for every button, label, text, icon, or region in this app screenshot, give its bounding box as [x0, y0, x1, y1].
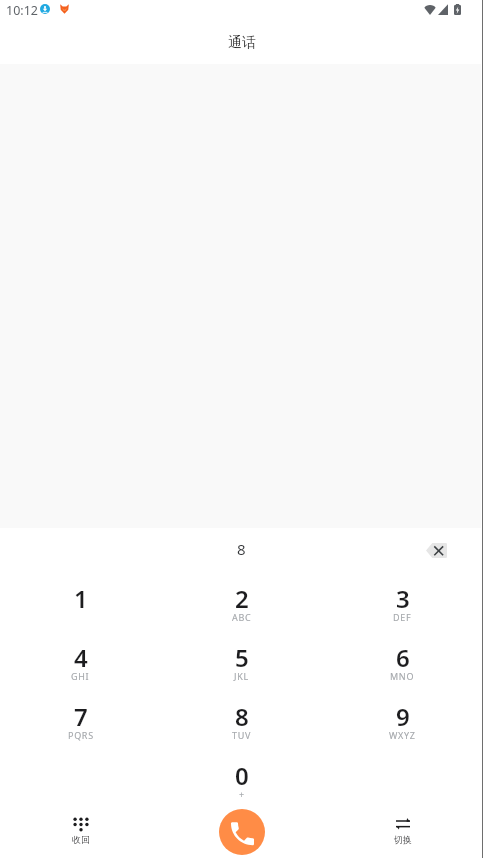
staticText: MNO — [390, 670, 415, 682]
button[interactable]: 7 — [0, 688, 161, 747]
staticText: 9 — [396, 700, 410, 733]
button[interactable]: Call — [219, 809, 265, 855]
staticText: 0 — [235, 759, 249, 792]
button[interactable]: Backspace — [426, 543, 447, 558]
button[interactable]: 5 — [161, 629, 322, 688]
staticText: 1 — [74, 582, 88, 615]
staticText: 4 — [74, 641, 88, 674]
staticText: 10:12 — [6, 2, 38, 19]
staticText: 5 — [235, 641, 249, 674]
button[interactable]: 1 — [0, 570, 161, 629]
staticText: DEF — [393, 611, 412, 623]
staticText: 3 — [396, 582, 410, 615]
staticText: 2 — [235, 582, 249, 615]
staticText: 8 — [235, 700, 249, 733]
button[interactable]: 4 — [0, 629, 161, 688]
staticText: JKL — [234, 670, 249, 682]
staticText: 8 — [237, 539, 246, 559]
staticText: PQRS — [68, 729, 94, 741]
staticText: 收回 — [72, 834, 90, 845]
button[interactable]: 6 — [322, 629, 483, 688]
staticText: 7 — [74, 700, 88, 733]
staticText: TUV — [232, 729, 252, 741]
staticText: + — [239, 788, 245, 800]
button[interactable]: 8 — [161, 688, 322, 747]
button[interactable]: 收回 — [0, 806, 161, 858]
staticText: 切换 — [394, 834, 412, 845]
button[interactable]: 0 — [161, 747, 322, 806]
staticText: GHI — [71, 670, 90, 682]
button[interactable]: 2 — [161, 570, 322, 629]
staticText: WXYZ — [389, 729, 416, 741]
staticText: ABC — [232, 611, 252, 623]
button[interactable]: 9 — [322, 688, 483, 747]
staticText: 6 — [396, 641, 410, 674]
button[interactable]: 3 — [322, 570, 483, 629]
staticText: 通话 — [228, 34, 256, 52]
button[interactable]: 切换 — [322, 806, 483, 858]
